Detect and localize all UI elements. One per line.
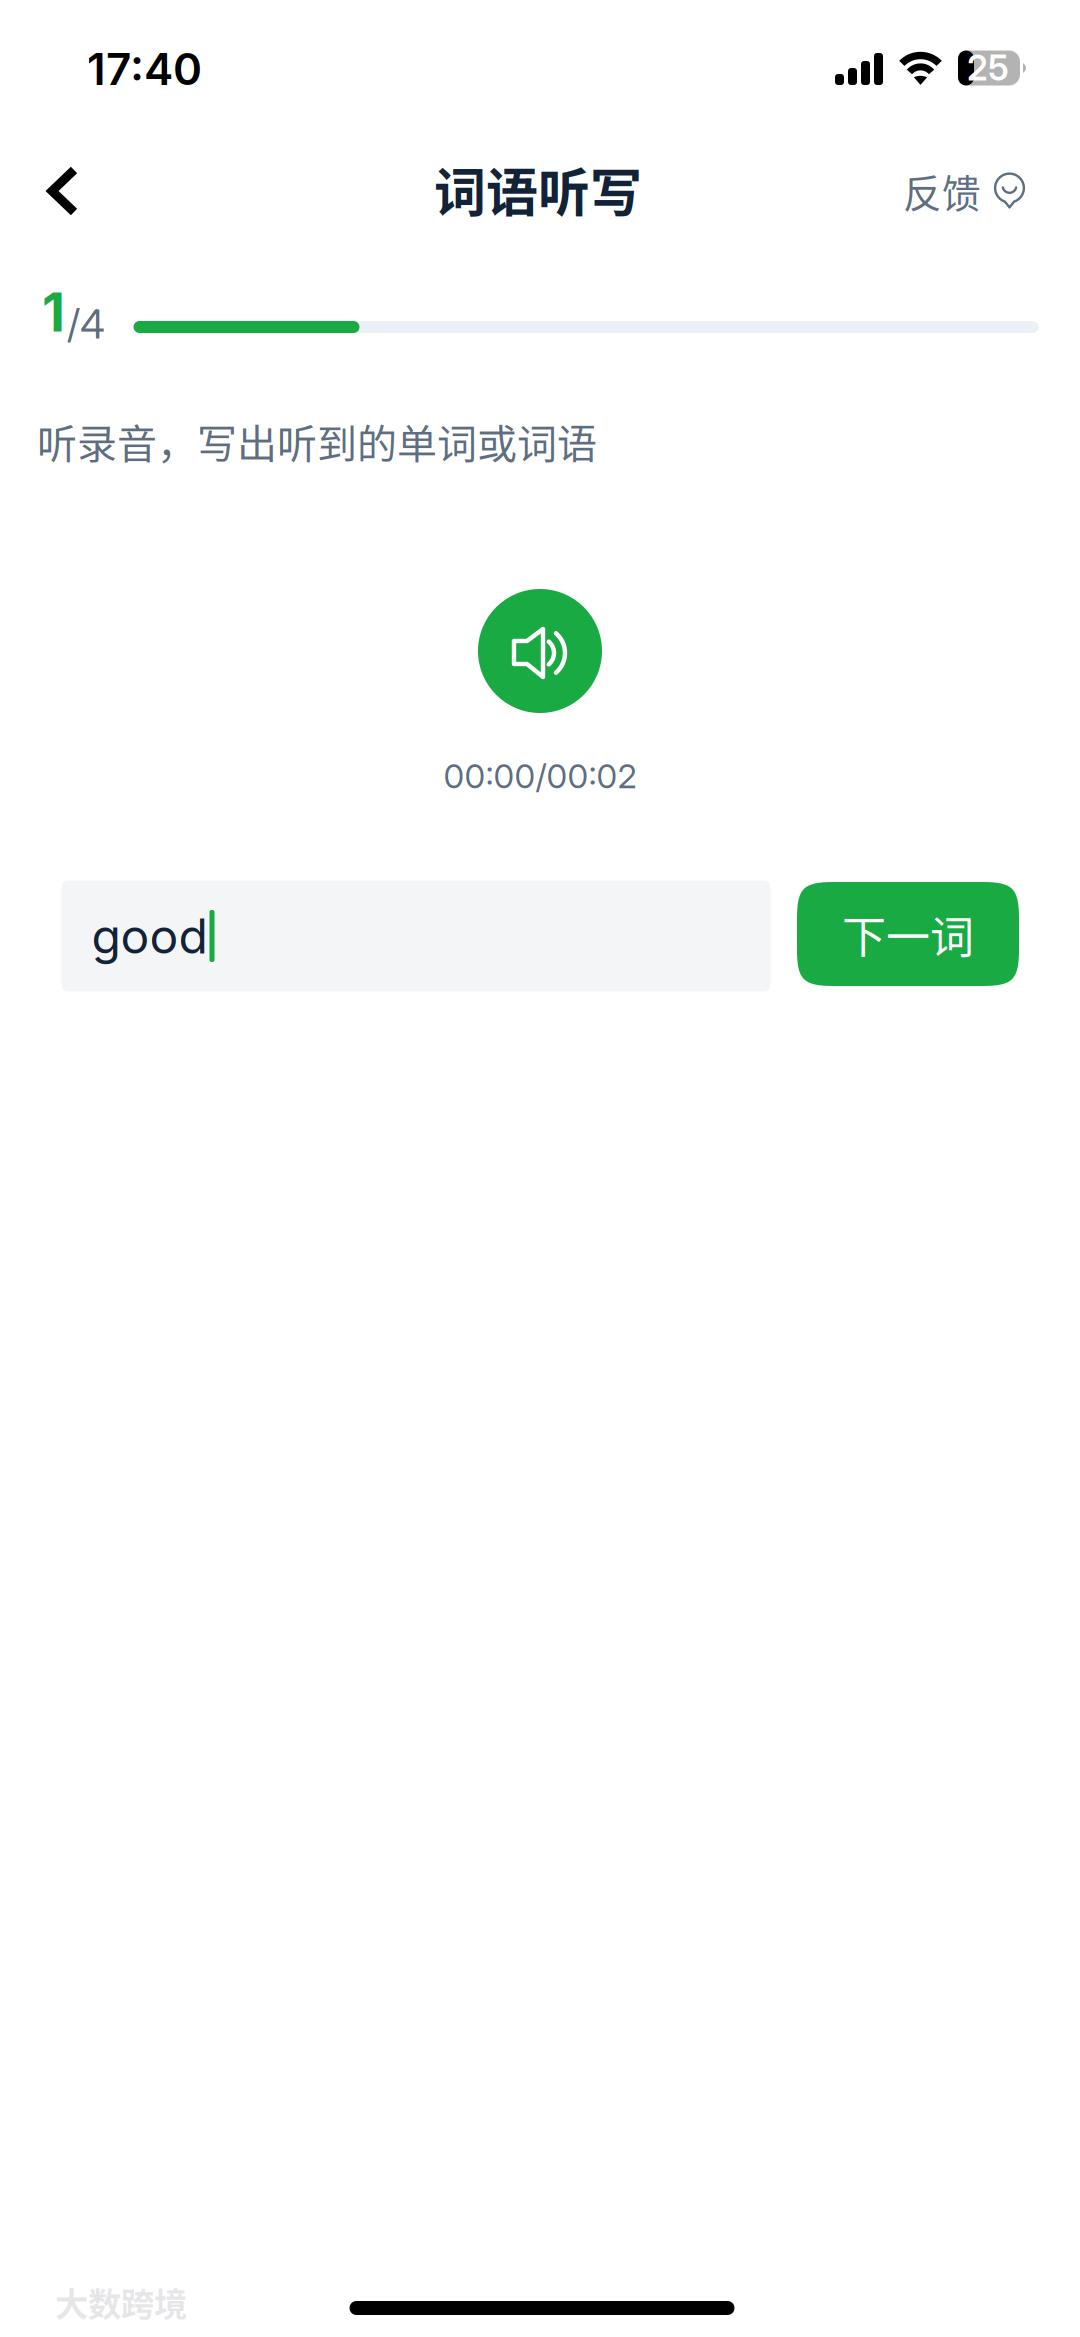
button[interactable]: 播放录音 <box>478 589 602 713</box>
staticText: 大数跨境 <box>55 2278 187 2326</box>
staticText: 听录音，写出听到的单词或词语 <box>37 412 597 470</box>
staticText: 1 <box>42 280 65 344</box>
staticText: 词语听写 <box>434 151 642 227</box>
button[interactable]: 返回 <box>14 143 110 239</box>
staticText: /4 <box>67 300 105 348</box>
staticText: 17:40 <box>87 42 202 96</box>
staticText: 下一词 <box>842 902 974 966</box>
staticText: 00:00/00:02 <box>443 756 636 796</box>
staticText: 25 <box>967 47 1009 89</box>
button[interactable]: 反馈 <box>865 148 1025 234</box>
button[interactable]: 下一词 <box>797 882 1019 986</box>
staticText: 反馈 <box>903 163 981 219</box>
staticText: good <box>91 907 207 965</box>
